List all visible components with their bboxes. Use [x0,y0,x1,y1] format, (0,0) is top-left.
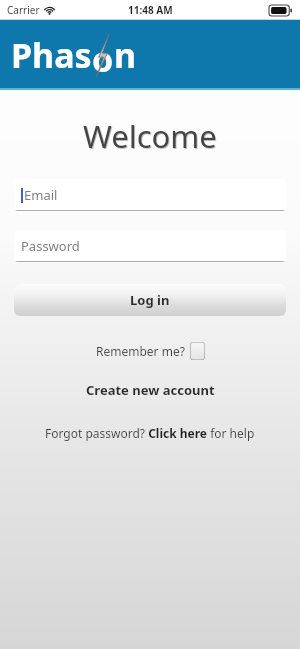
button[interactable]: Create new account [0,381,300,399]
button[interactable]: Forgot password? Click here for help [0,425,300,441]
staticText: Log in [130,291,170,309]
staticText: 11:48 AM [128,3,173,17]
staticText: Create new account [86,381,215,399]
button[interactable]: Password [14,230,286,262]
button[interactable]: Remember me? [96,342,205,360]
staticText: o [92,36,114,80]
staticText: Welcome [84,116,218,158]
staticText: Welcome [83,115,217,157]
staticText: Email [24,186,58,204]
button[interactable]: Phason logo [11,32,137,78]
staticText: n [114,32,137,78]
staticText: Password [21,237,80,255]
staticText: Carrier [7,3,40,17]
staticText: Forgot password? Click here for help [45,425,255,441]
staticText: Remember me? [96,343,185,359]
button[interactable]: Email [14,179,286,211]
staticText: Phas [11,32,92,78]
button[interactable]: Log in [14,284,286,316]
